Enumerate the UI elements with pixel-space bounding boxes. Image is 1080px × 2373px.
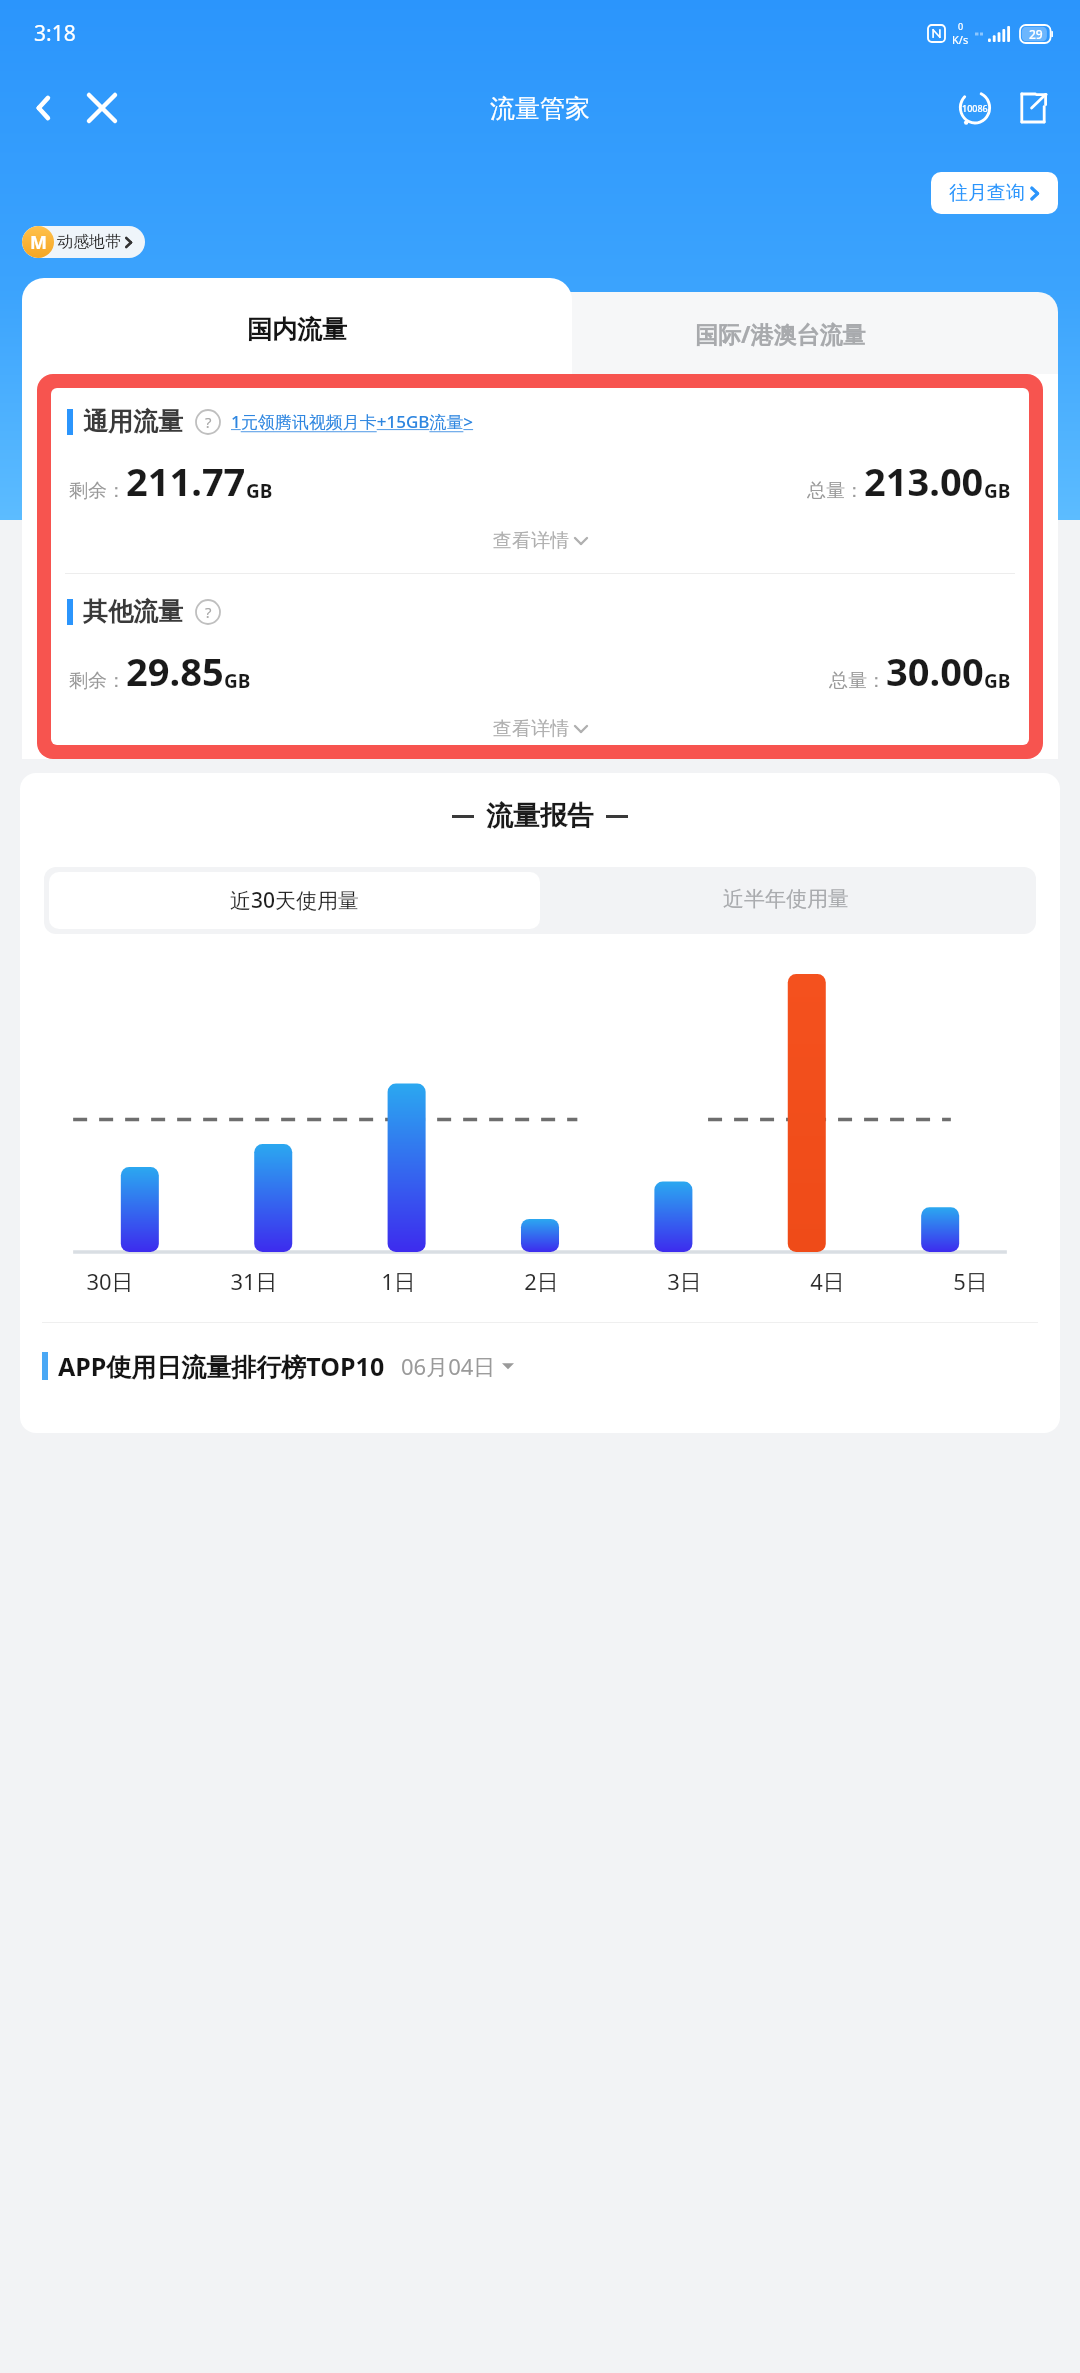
- staticText: GB: [246, 478, 273, 504]
- staticText: 3日: [667, 1266, 702, 1296]
- staticText: 211.77: [126, 455, 246, 507]
- staticText: GB: [984, 478, 1011, 504]
- staticText: 动感地带: [57, 232, 121, 252]
- button[interactable]: Back: [18, 82, 70, 134]
- staticText: 国内流量: [247, 314, 347, 345]
- button[interactable]: 近30天使用量: [49, 872, 540, 929]
- staticText: 213.00: [864, 455, 984, 507]
- staticText: ?: [205, 602, 212, 622]
- staticText: 2日: [524, 1266, 559, 1296]
- staticText: 29: [1029, 26, 1043, 42]
- button[interactable]: APP使用日流量排行榜TOP10: [42, 1349, 1060, 1383]
- staticText: 往月查询: [949, 181, 1025, 205]
- button[interactable]: Close: [76, 82, 128, 134]
- button[interactable]: 近半年使用量: [540, 872, 1031, 926]
- staticText: 近30天使用量: [230, 886, 360, 915]
- button[interactable]: 查看详情: [481, 715, 599, 743]
- button[interactable]: 查看详情: [481, 527, 599, 555]
- button[interactable]: Call 10086: [948, 81, 1002, 135]
- button[interactable]: 国际/港澳台流量: [503, 292, 1058, 374]
- staticText: 1日: [381, 1266, 416, 1296]
- staticText: K/s: [952, 32, 969, 47]
- button[interactable]: Help: [195, 409, 221, 435]
- staticText: 总量：: [829, 669, 886, 693]
- staticText: 10086: [962, 102, 988, 114]
- staticText: 31日: [230, 1266, 278, 1296]
- staticText: 0: [958, 20, 964, 32]
- staticText: 查看详情: [493, 717, 569, 741]
- button[interactable]: 往月查询: [931, 172, 1058, 214]
- staticText: APP使用日流量排行榜TOP10: [58, 1349, 385, 1383]
- staticText: 流量报告: [486, 799, 594, 833]
- staticText: 剩余：: [69, 479, 126, 503]
- staticText: 06月04日: [401, 1351, 496, 1381]
- staticText: 3:18: [34, 19, 76, 48]
- staticText: 查看详情: [493, 529, 569, 553]
- button[interactable]: 国内流量: [22, 278, 572, 374]
- staticText: M: [30, 230, 47, 255]
- staticText: GB: [984, 668, 1011, 694]
- staticText: GB: [224, 668, 251, 694]
- staticText: 流量管家: [490, 93, 590, 124]
- staticText: 4日: [810, 1266, 845, 1296]
- button[interactable]: M: [22, 226, 145, 258]
- staticText: 通用流量: [83, 406, 183, 437]
- staticText: 5日: [953, 1266, 988, 1296]
- staticText: 30日: [86, 1266, 134, 1296]
- staticText: 其他流量: [83, 596, 183, 627]
- staticText: 29.85: [126, 645, 224, 697]
- staticText: 剩余：: [69, 669, 126, 693]
- staticText: 近半年使用量: [723, 886, 849, 912]
- button[interactable]: Help: [195, 599, 221, 625]
- button[interactable]: Share: [1006, 81, 1060, 135]
- staticText: 30.00: [886, 645, 984, 697]
- staticText: 总量：: [807, 479, 864, 503]
- staticText: ?: [205, 412, 212, 432]
- button[interactable]: 1元领腾讯视频月卡+15GB流量>: [231, 410, 474, 433]
- staticText: 国际/港澳台流量: [695, 318, 866, 349]
